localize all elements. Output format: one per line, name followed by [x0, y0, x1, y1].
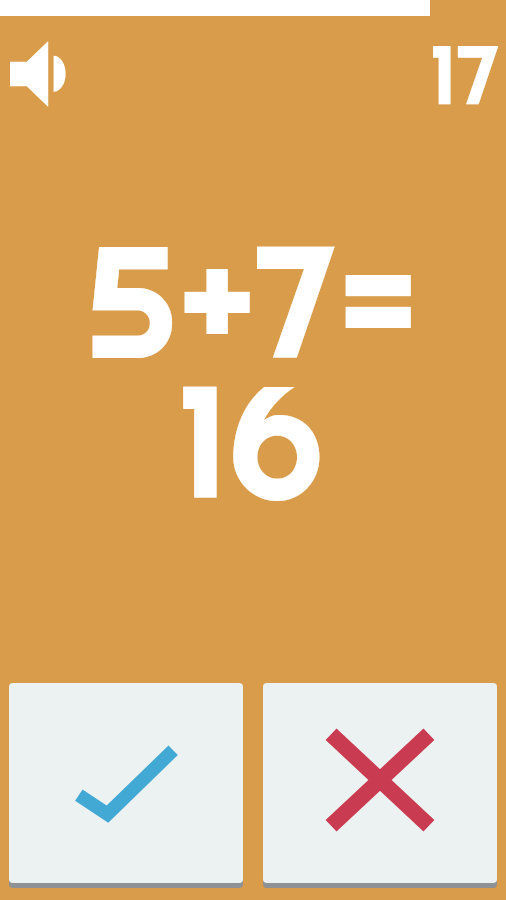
button[interactable]: Toggle sound [0, 32, 74, 116]
staticText: 17 [430, 23, 499, 119]
button[interactable]: Correct [9, 683, 243, 883]
staticText: 5+7= [85, 202, 422, 388]
staticText: 16 [177, 342, 325, 528]
button[interactable]: Wrong [263, 683, 497, 883]
button[interactable]: 17 [402, 23, 502, 119]
